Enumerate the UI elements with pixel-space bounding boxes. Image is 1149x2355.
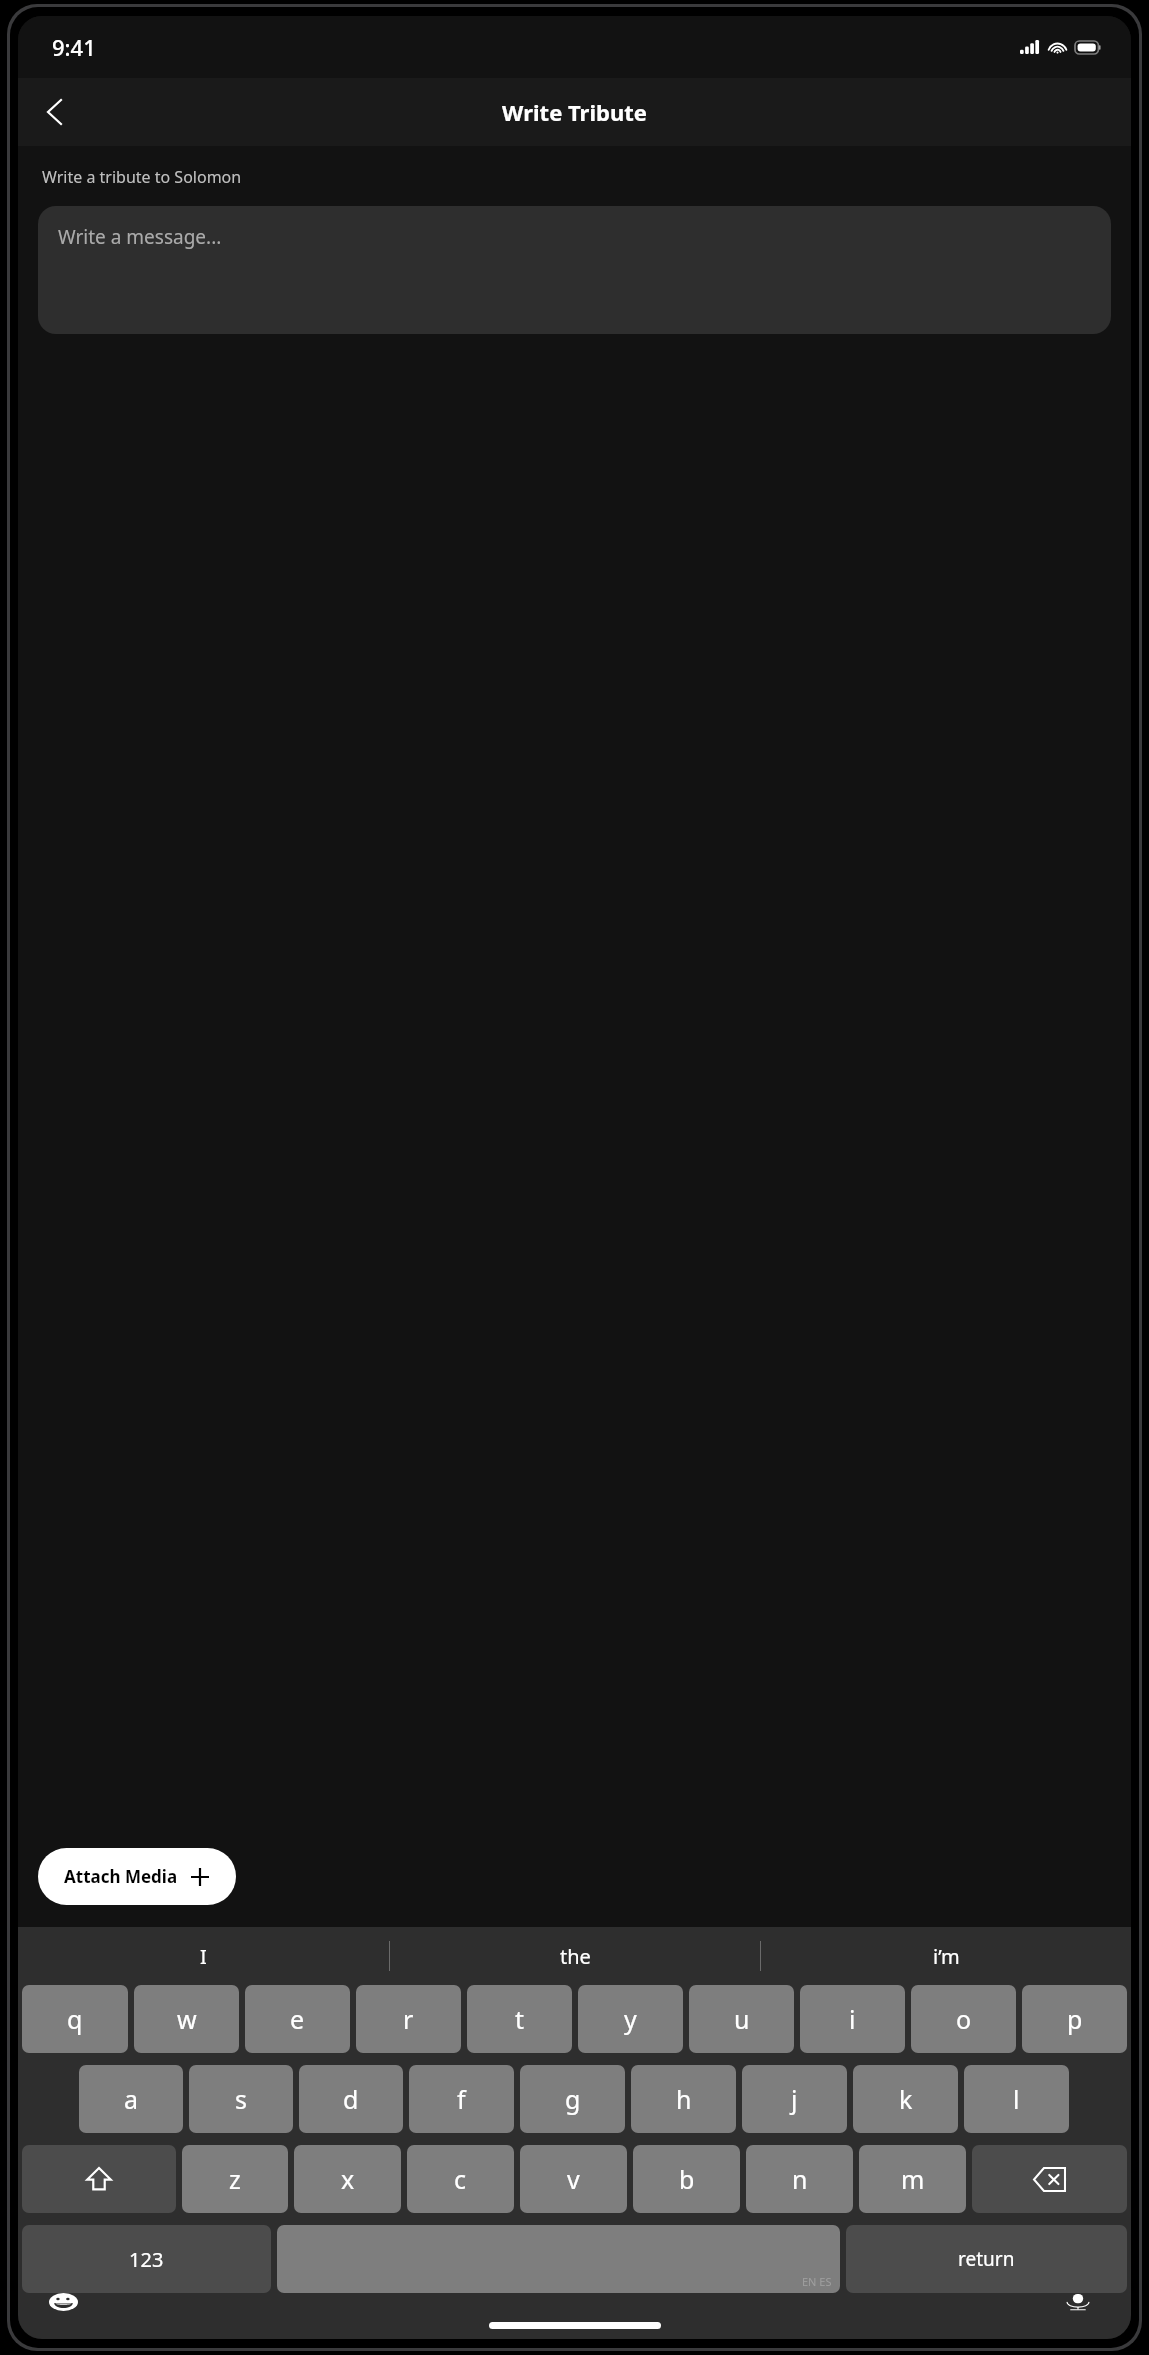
staticText: the — [560, 1943, 591, 1970]
button[interactable]: e — [245, 1985, 350, 2053]
button[interactable]: c — [407, 2145, 514, 2213]
button[interactable]: k — [853, 2065, 958, 2133]
button[interactable]: p — [1022, 1985, 1127, 2053]
button[interactable]: return — [846, 2225, 1127, 2293]
staticText: Write a message... — [58, 224, 222, 250]
button[interactable]: n — [746, 2145, 853, 2213]
button[interactable]: Emoji — [36, 2293, 90, 2311]
button[interactable]: q — [22, 1985, 128, 2053]
button[interactable]: x — [294, 2145, 401, 2213]
staticText: I — [200, 1943, 207, 1970]
staticText: p — [1067, 2002, 1083, 2036]
button[interactable]: v — [520, 2145, 627, 2213]
button[interactable]: d — [299, 2065, 403, 2133]
staticText: w — [177, 2002, 197, 2036]
button[interactable]: Backspace — [972, 2145, 1127, 2213]
button[interactable]: Write a message... — [38, 206, 1111, 334]
staticText: j — [791, 2082, 798, 2116]
button[interactable]: s — [189, 2065, 293, 2133]
staticText: n — [792, 2162, 808, 2196]
button[interactable]: r — [356, 1985, 461, 2053]
button[interactable]: u — [689, 1985, 794, 2053]
staticText: r — [403, 2002, 414, 2036]
staticText: z — [229, 2162, 241, 2196]
staticText: Write a tribute to Solomon — [42, 166, 242, 188]
button[interactable]: Attach Media — [38, 1848, 236, 1905]
button[interactable]: y — [578, 1985, 683, 2053]
staticText: o — [956, 2002, 972, 2036]
staticText: h — [676, 2082, 692, 2116]
staticText: e — [290, 2002, 305, 2036]
button[interactable]: j — [742, 2065, 847, 2133]
staticText: g — [565, 2082, 581, 2116]
staticText: d — [343, 2082, 359, 2116]
button[interactable]: l — [964, 2065, 1069, 2133]
button[interactable]: Back — [28, 86, 80, 138]
button[interactable]: Shift — [22, 2145, 176, 2213]
staticText: f — [457, 2082, 466, 2116]
staticText: i’m — [933, 1943, 960, 1970]
staticText: s — [235, 2082, 247, 2116]
button[interactable]: i — [800, 1985, 905, 2053]
button[interactable]: w — [134, 1985, 239, 2053]
staticText: b — [679, 2162, 695, 2196]
staticText: l — [1013, 2082, 1020, 2116]
button[interactable]: i’m — [761, 1927, 1131, 1985]
staticText: Attach Media — [64, 1865, 178, 1888]
staticText: v — [567, 2162, 580, 2196]
button[interactable]: b — [633, 2145, 740, 2213]
button[interactable]: g — [520, 2065, 625, 2133]
staticText: 123 — [129, 2246, 164, 2273]
button[interactable]: 123 — [22, 2225, 271, 2293]
button[interactable]: a — [79, 2065, 183, 2133]
staticText: k — [899, 2082, 913, 2116]
button[interactable]: I — [18, 1927, 389, 1985]
button[interactable]: the — [390, 1927, 760, 1985]
staticText: a — [124, 2082, 139, 2116]
button[interactable]: m — [859, 2145, 966, 2213]
staticText: Write Tribute — [502, 97, 647, 127]
staticText: y — [624, 2002, 637, 2036]
button[interactable]: Voice input — [1051, 2293, 1105, 2311]
staticText: u — [734, 2002, 750, 2036]
staticText: x — [341, 2162, 355, 2196]
button[interactable]: t — [467, 1985, 572, 2053]
staticText: i — [849, 2002, 856, 2036]
staticText: m — [901, 2162, 925, 2196]
button[interactable]: f — [409, 2065, 514, 2133]
staticText: t — [515, 2002, 525, 2036]
staticText: 9:41 — [52, 32, 96, 62]
button[interactable]: o — [911, 1985, 1016, 2053]
staticText: EN ES — [802, 2274, 832, 2289]
button[interactable]: h — [631, 2065, 736, 2133]
staticText: c — [454, 2162, 467, 2196]
staticText: return — [958, 2246, 1015, 2272]
button[interactable]: z — [182, 2145, 288, 2213]
staticText: q — [67, 2002, 83, 2036]
